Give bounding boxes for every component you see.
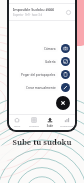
staticText: Sudokus — [26, 124, 42, 127]
staticText: Inicio — [9, 124, 25, 127]
button[interactable]: Pegar del portapapeles — [19, 70, 70, 79]
staticText: Crear manualmente — [26, 86, 56, 90]
button[interactable]: Estadísticas — [59, 116, 75, 128]
staticText: Sube tu sudoku — [0, 137, 84, 147]
button[interactable]: Inicio — [9, 116, 25, 128]
button[interactable]: Galería — [43, 57, 70, 66]
button[interactable]: Crear manualmente — [24, 83, 70, 92]
button[interactable]: Cerrar menú — [56, 96, 70, 110]
staticText: Subir — [42, 124, 58, 127]
staticText: Pegar del portapapeles — [21, 73, 56, 77]
button[interactable]: Cámara — [42, 44, 70, 53]
button[interactable]: Imposible Sudoku #444 — [9, 4, 75, 20]
button[interactable]: Sudokus — [26, 116, 42, 128]
staticText: Experto · 9×9 · hace 3 d — [13, 13, 43, 17]
button[interactable]: Subir — [42, 116, 58, 128]
staticText: Estadísticas — [59, 124, 75, 127]
staticText: Galería — [45, 60, 56, 64]
staticText: Cámara — [44, 47, 56, 51]
staticText: Imposible Sudoku #444 — [13, 7, 54, 12]
